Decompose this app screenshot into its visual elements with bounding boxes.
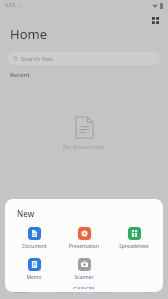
button[interactable]: Document: [9, 226, 59, 251]
staticText: 5:13: [5, 2, 15, 9]
button[interactable]: Presentation: [59, 226, 109, 251]
button[interactable]: Memo: [9, 257, 59, 282]
staticText: Search files: [21, 55, 53, 63]
staticText: Scanner: [74, 274, 94, 281]
staticText: Starred: [98, 289, 112, 294]
button[interactable]: Files: [126, 284, 168, 299]
staticText: Document: [22, 243, 47, 250]
staticText: New: [17, 208, 35, 219]
button[interactable]: Switch to grid view: [147, 12, 163, 28]
staticText: Shared: [56, 289, 70, 294]
staticText: Home: [10, 25, 47, 43]
button[interactable]: Shared: [42, 284, 84, 299]
staticText: CANCEL: [73, 285, 96, 289]
staticText: Memo: [26, 274, 42, 281]
button[interactable]: Scanner: [59, 257, 109, 282]
button[interactable]: Search files: [8, 52, 160, 65]
staticText: Files: [143, 289, 152, 294]
staticText: Spreadsheet: [119, 243, 149, 250]
staticText: Presentation: [69, 243, 99, 250]
button[interactable]: Home: [0, 284, 42, 299]
button[interactable]: CANCEL: [66, 282, 103, 292]
button[interactable]: Spreadsheet: [109, 226, 159, 251]
staticText: No documents: [63, 143, 105, 151]
staticText: Recent: [10, 71, 30, 79]
button[interactable]: Starred: [84, 284, 126, 299]
staticText: Home: [15, 289, 27, 294]
